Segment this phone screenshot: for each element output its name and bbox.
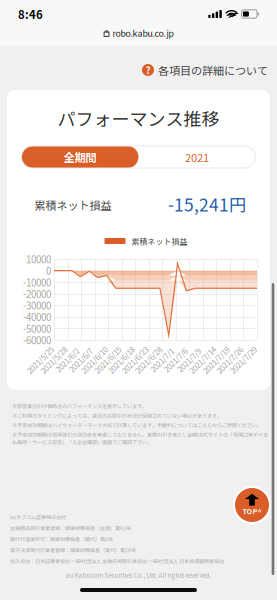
staticText: au Kabucom Securities Co., Ltd. All righ…	[65, 570, 211, 580]
staticText: 2021/6/18	[104, 354, 138, 366]
staticText: -50000	[23, 321, 51, 335]
staticText: -20000	[23, 287, 51, 301]
staticText: 2021/7/26	[212, 354, 246, 366]
staticText: 2021/7/19	[199, 354, 233, 366]
staticText: 金融商品取引業者登録：関東財務局長（金商）第61号	[10, 524, 131, 532]
staticText: 2021/6/23	[118, 354, 152, 366]
staticText: 2021/7/14	[185, 354, 219, 366]
staticText: パフォーマンス推移	[57, 105, 219, 131]
staticText: -30000	[23, 298, 51, 312]
staticText: 2021/7/1	[147, 354, 177, 366]
staticText: -10000	[23, 275, 51, 289]
staticText: 0	[46, 263, 51, 278]
staticText: -15,241円	[168, 191, 246, 217]
staticText: 電子決済等代行業者登録：関東財務局長（電代）第18号	[10, 546, 136, 554]
staticText: 2021/7/9	[174, 354, 204, 366]
button[interactable]: Back to top	[233, 486, 271, 524]
staticText: 累積ネット損益	[34, 197, 111, 213]
staticText: ※予定成功報酬はハイウォーターマーク方式で計算しています。手数料についてはこちら…	[12, 421, 262, 429]
staticText: 2021/6/10	[77, 354, 111, 366]
staticText: TOP^	[242, 506, 261, 516]
staticText: 2021	[185, 149, 209, 165]
staticText: 2021/5/28	[36, 354, 70, 366]
staticText: 全期間	[63, 149, 96, 165]
staticText: ※ご利用のタイミングによっては、直近のお取引の状況が反映されていない場合がありま…	[12, 412, 222, 419]
staticText: 2021/6/7	[66, 354, 96, 366]
staticText: 累積ネット損益	[131, 235, 187, 247]
staticText: 8:46	[18, 6, 43, 22]
staticText: 2021/5/25	[23, 354, 57, 366]
staticText: robo.kabu.co.jp	[112, 27, 173, 39]
staticText: ※前営業日引け後時点のパフォーマンスを表示しています。	[12, 402, 147, 410]
staticText: 10000	[26, 252, 51, 266]
staticText: 銀行代理業許可：関東財務局長（銀代）第8号	[10, 535, 113, 543]
staticText: 2021/6/28	[131, 354, 165, 366]
staticText: 加入協会：日本証券業協会 一般社団法人 金融先物取引業協会 一般社団法人 日本投…	[10, 557, 224, 565]
button[interactable]: 全期間	[21, 146, 138, 168]
staticText: -60000	[23, 333, 51, 347]
staticText: ※予定成功報酬は信用取引の逆日歩を考慮しておりません。実際の引き落とし金額はPC…	[12, 431, 268, 446]
button[interactable]: ?	[142, 58, 268, 82]
staticText: 各項目の詳細について	[158, 62, 268, 78]
staticText: 2021/7/6	[160, 354, 190, 366]
button[interactable]: 2021	[138, 146, 255, 168]
staticText: 2021/7/29	[226, 354, 260, 366]
staticText: 2021/6/15	[91, 354, 125, 366]
staticText: auカブコム証券株式会社	[10, 513, 66, 521]
staticText: 2021/6/2	[52, 354, 82, 366]
staticText: ?	[145, 63, 150, 77]
staticText: -40000	[23, 310, 51, 324]
